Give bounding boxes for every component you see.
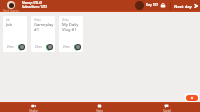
button[interactable]: Video	[59, 16, 83, 52]
staticText: Video	[34, 18, 41, 22]
staticText: Video	[62, 18, 69, 22]
button[interactable]: Calendar	[135, 1, 144, 10]
staticText: Stats	[96, 109, 103, 112]
button[interactable]: Video	[31, 16, 55, 52]
staticText: Money: $10.41	[22, 1, 43, 5]
staticText: Job	[6, 18, 10, 22]
staticText: Day 107	[146, 3, 158, 7]
staticText: Nerd Games	[3, 9, 19, 12]
staticText: Gameplay #1	[34, 22, 54, 32]
staticText: 2 hrs	[63, 45, 70, 49]
button[interactable]: Social	[133, 103, 200, 112]
button[interactable]: Channel	[7, 1, 15, 9]
staticText: 2 hrs	[7, 45, 14, 49]
button[interactable]: Shop	[160, 3, 166, 8]
button[interactable]: Studio	[0, 103, 66, 112]
button[interactable]: Stats	[66, 103, 133, 112]
staticText: 2 hrs	[35, 45, 42, 49]
button[interactable]: Next day	[174, 3, 200, 9]
staticText: Studio	[29, 109, 38, 112]
staticText: My Daily Vlog #1	[62, 22, 82, 32]
staticText: Social	[163, 109, 171, 112]
staticText: Subscribers: 1273	[22, 5, 47, 9]
staticText: Job	[6, 22, 13, 28]
button[interactable]: New video	[184, 93, 199, 102]
staticText: Next day	[174, 4, 192, 9]
button[interactable]: Job	[3, 16, 27, 52]
